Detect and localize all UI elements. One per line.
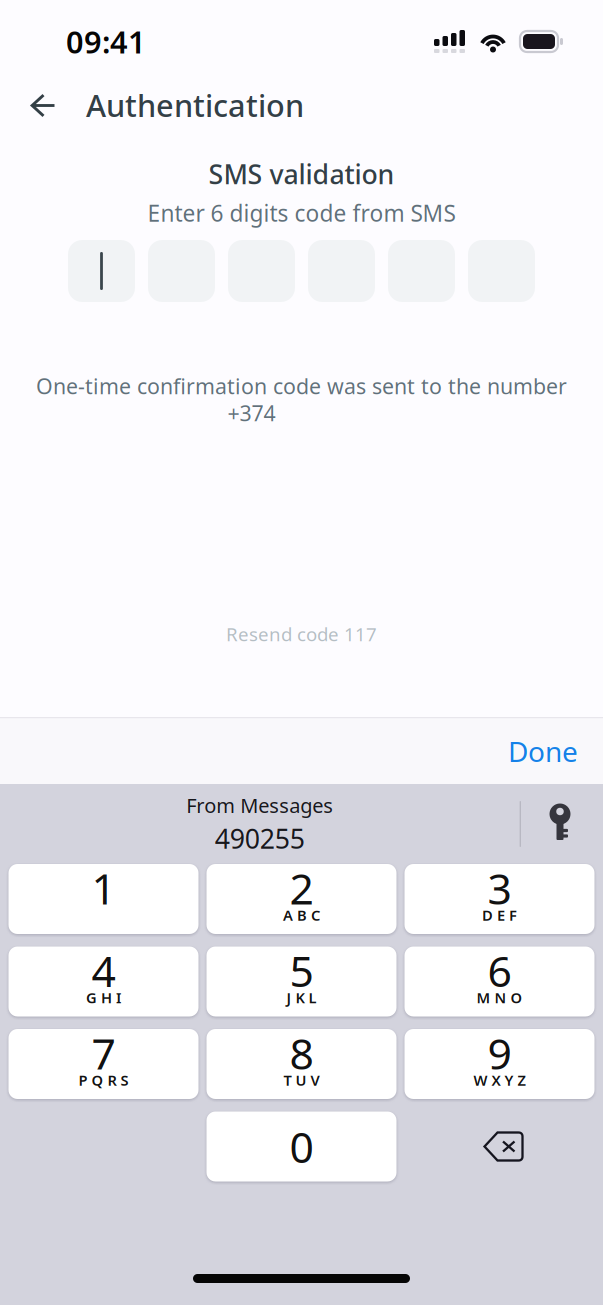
button[interactable]: 6 [404, 946, 594, 1016]
staticText: One-time confirmation code was sent to t… [36, 372, 567, 400]
staticText: 490255 [215, 821, 305, 856]
button[interactable]: 3 [404, 864, 594, 934]
staticText: W X Y Z [473, 1070, 525, 1090]
staticText: 2 [289, 860, 313, 916]
staticText: Resend code 117 [226, 622, 377, 646]
staticText: J K L [286, 988, 316, 1007]
staticText: 4 [91, 942, 115, 999]
staticText: From Messages [186, 792, 333, 819]
staticText: Done [508, 732, 578, 770]
button[interactable]: 0 [206, 1111, 396, 1181]
button[interactable]: Resend code 117 [226, 621, 377, 647]
button[interactable]: 2 [206, 864, 396, 934]
staticText: 6 [487, 942, 511, 999]
staticText: Authentication [86, 85, 304, 125]
staticText: +374 [227, 399, 275, 427]
button[interactable]: 5 [206, 946, 396, 1016]
button[interactable]: 9 [404, 1029, 594, 1099]
staticText: 9 [487, 1025, 511, 1081]
staticText: 3 [487, 860, 511, 916]
button[interactable]: 1 [8, 864, 198, 934]
staticText: 0 [289, 1118, 313, 1175]
staticText: G H I [86, 988, 121, 1007]
staticText: D E F [482, 905, 517, 925]
staticText: 1 [91, 860, 115, 916]
staticText: SMS validation [208, 156, 394, 192]
staticText: T U V [283, 1070, 319, 1090]
button[interactable]: 8 [206, 1029, 396, 1099]
staticText: 8 [289, 1025, 313, 1081]
staticText: 7 [91, 1025, 115, 1081]
staticText: Enter 6 digits code from SMS [147, 198, 455, 228]
button[interactable]: Passwords [521, 794, 595, 854]
button[interactable]: 4 [8, 946, 198, 1016]
staticText: 5 [289, 942, 313, 999]
staticText: M N O [476, 988, 522, 1007]
button[interactable]: Done [508, 732, 603, 770]
button[interactable]: Back [15, 69, 71, 136]
button[interactable]: Delete [404, 1111, 594, 1181]
staticText: 09:41 [66, 21, 146, 62]
button[interactable]: 7 [8, 1029, 198, 1099]
staticText: A B C [283, 905, 320, 925]
staticText: P Q R S [78, 1070, 128, 1090]
